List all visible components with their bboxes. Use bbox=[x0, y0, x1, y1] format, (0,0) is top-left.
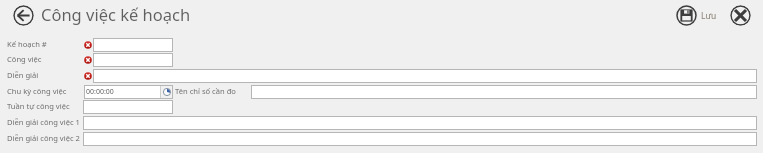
staticText: Tuần tự công việc bbox=[7, 101, 70, 111]
button[interactable] bbox=[93, 38, 173, 52]
button[interactable] bbox=[93, 53, 173, 67]
button[interactable]: Close bbox=[730, 5, 751, 26]
button[interactable] bbox=[83, 116, 757, 130]
staticText: Diễn giải công việc 1 bbox=[7, 117, 80, 127]
staticText: Kế hoạch # bbox=[7, 39, 47, 49]
button[interactable] bbox=[83, 132, 757, 146]
staticText: Công việc kế hoạch bbox=[41, 3, 191, 25]
button[interactable]: 00:00:00 bbox=[84, 85, 173, 99]
other: Required field bbox=[84, 56, 92, 64]
button[interactable]: Back bbox=[13, 5, 34, 26]
staticText: Tên chỉ số cần đo bbox=[175, 86, 236, 96]
button[interactable] bbox=[251, 85, 757, 99]
button[interactable] bbox=[83, 100, 173, 114]
button[interactable] bbox=[93, 69, 757, 83]
staticText: Công việc bbox=[7, 54, 42, 64]
staticText: Chu kỳ công việc bbox=[7, 86, 67, 96]
staticText: Diễn giải bbox=[7, 70, 39, 80]
other: Required field bbox=[84, 72, 92, 80]
button[interactable]: Pick time bbox=[161, 86, 172, 98]
other: Required field bbox=[84, 41, 92, 49]
staticText: Diễn giải công việc 2 bbox=[7, 133, 80, 143]
staticText: 00:00:00 bbox=[86, 87, 114, 97]
button[interactable]: Lưu bbox=[676, 5, 717, 26]
staticText: Lưu bbox=[701, 10, 717, 21]
